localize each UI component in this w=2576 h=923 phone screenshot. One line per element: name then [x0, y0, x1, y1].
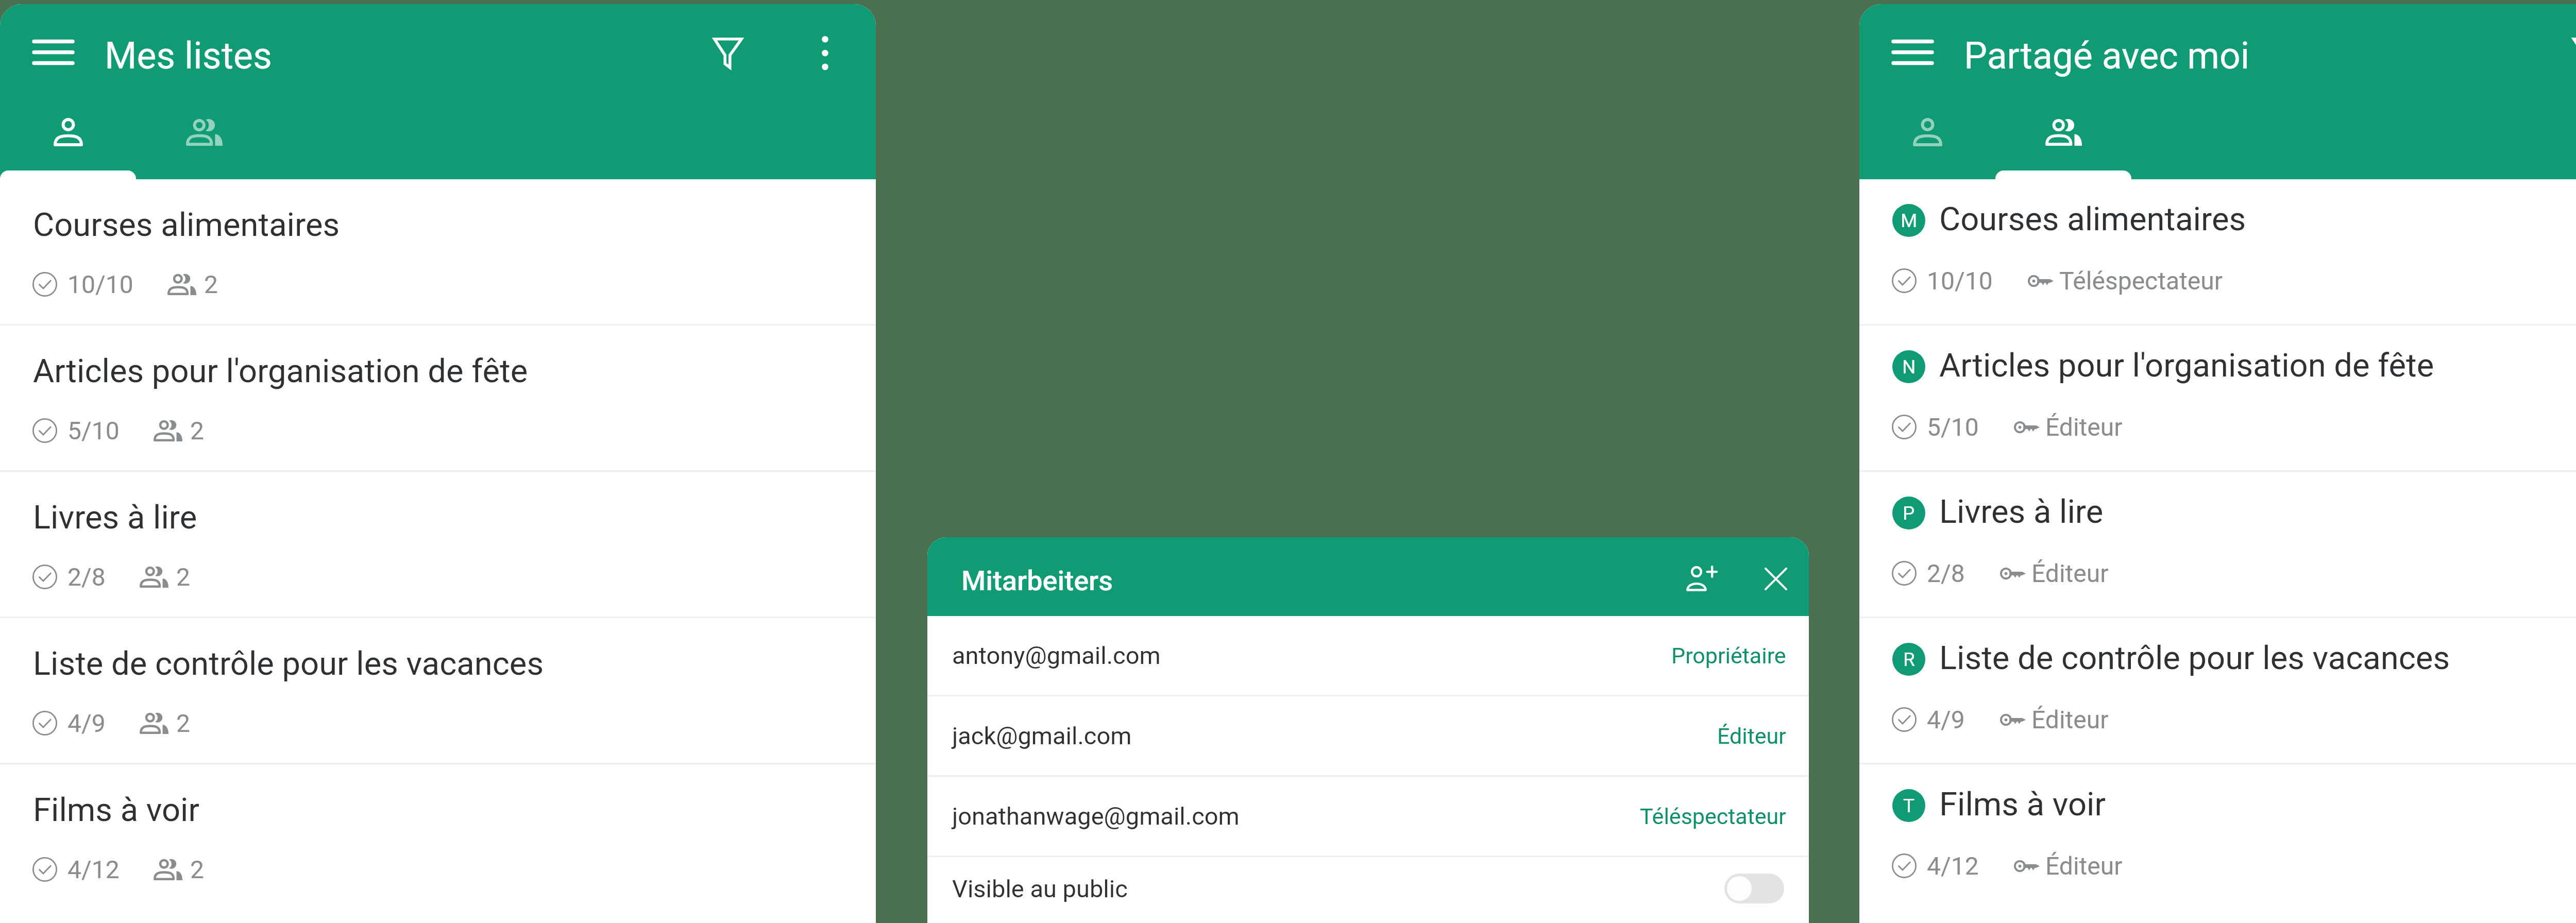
- staticText: 2/8: [67, 562, 106, 591]
- staticText: jack@gmail.com: [952, 722, 1717, 750]
- button[interactable]: Liste de contrôle pour les vacances: [0, 618, 876, 763]
- button[interactable]: P: [1859, 472, 2576, 617]
- staticText: Courses alimentaires: [33, 206, 340, 244]
- staticText: Éditeur: [2031, 705, 2109, 734]
- staticText: 4/12: [1927, 851, 1979, 880]
- staticText: Propriétaire: [1671, 643, 1786, 669]
- staticText: Téléspectateur: [2059, 266, 2223, 295]
- staticText: Liste de contrôle pour les vacances: [33, 644, 544, 682]
- staticText: Éditeur: [2031, 559, 2109, 588]
- staticText: antony@gmail.com: [952, 641, 1671, 670]
- button[interactable]: My lists tab: [1859, 111, 1995, 179]
- staticText: Partagé avec moi: [1964, 35, 2250, 78]
- staticText: N: [1902, 356, 1916, 378]
- button[interactable]: Films à voir: [0, 764, 876, 909]
- staticText: Articles pour l'organisation de fête: [33, 352, 528, 390]
- staticText: Films à voir: [1939, 785, 2106, 823]
- button[interactable]: More options: [808, 24, 842, 82]
- staticText: Éditeur: [2045, 851, 2123, 880]
- staticText: Téléspectateur: [1640, 804, 1786, 829]
- staticText: 2: [190, 855, 204, 884]
- button[interactable]: Close: [1754, 557, 1798, 601]
- button[interactable]: Filter: [2560, 25, 2576, 81]
- button[interactable]: Courses alimentaires: [0, 179, 876, 324]
- staticText: 5/10: [1927, 413, 1979, 441]
- staticText: Livres à lire: [33, 498, 197, 536]
- button[interactable]: Filter: [701, 25, 755, 81]
- staticText: Mes listes: [105, 35, 272, 78]
- button[interactable]: R: [1859, 618, 2576, 763]
- button[interactable]: Articles pour l'organisation de fête: [0, 326, 876, 470]
- button[interactable]: Menu: [22, 27, 85, 77]
- staticText: Liste de contrôle pour les vacances: [1939, 639, 2450, 677]
- button[interactable]: T: [1859, 764, 2576, 909]
- staticText: 5/10: [67, 416, 120, 445]
- button[interactable]: Shared with me tab: [136, 111, 272, 179]
- staticText: Films à voir: [33, 791, 199, 829]
- staticText: Articles pour l'organisation de fête: [1939, 346, 2434, 384]
- button[interactable]: Shared with me tab: [1995, 111, 2131, 179]
- staticText: Éditeur: [1717, 723, 1786, 749]
- staticText: P: [1903, 502, 1915, 524]
- button[interactable]: Visible au public: [927, 857, 1809, 920]
- button[interactable]: N: [1859, 326, 2576, 470]
- staticText: 10/10: [67, 270, 133, 299]
- staticText: R: [1903, 648, 1915, 671]
- button[interactable]: antony@gmail.com: [927, 616, 1809, 695]
- button[interactable]: jack@gmail.com: [927, 696, 1809, 775]
- staticText: jonathanwage@gmail.com: [952, 802, 1640, 830]
- staticText: 10/10: [1927, 266, 1993, 295]
- staticText: 4/9: [1927, 705, 1965, 734]
- staticText: Courses alimentaires: [1939, 200, 2246, 238]
- staticText: Éditeur: [2045, 413, 2123, 441]
- button[interactable]: Add person: [1676, 554, 1726, 604]
- staticText: Mitarbeiters: [961, 565, 1113, 597]
- staticText: M: [1901, 210, 1918, 232]
- staticText: 2: [176, 709, 190, 738]
- staticText: 2/8: [1927, 559, 1965, 588]
- staticText: 4/9: [67, 709, 106, 738]
- staticText: 4/12: [67, 855, 120, 884]
- button[interactable]: M: [1859, 179, 2576, 324]
- button[interactable]: My lists tab: [0, 111, 136, 179]
- staticText: 2: [176, 562, 190, 591]
- staticText: 2: [204, 270, 218, 299]
- staticText: Livres à lire: [1939, 492, 2104, 531]
- button[interactable]: Menu: [1881, 27, 1944, 77]
- button[interactable]: Livres à lire: [0, 472, 876, 617]
- staticText: Visible au public: [952, 875, 1724, 903]
- staticText: T: [1903, 795, 1915, 817]
- button[interactable]: jonathanwage@gmail.com: [927, 777, 1809, 856]
- staticText: 2: [190, 416, 204, 445]
